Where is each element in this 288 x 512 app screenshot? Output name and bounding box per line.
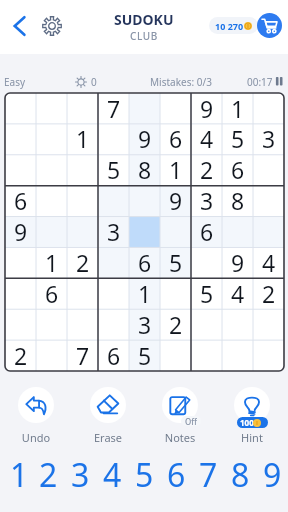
button[interactable] <box>5 123 36 154</box>
button[interactable] <box>5 278 36 309</box>
button[interactable]: 7 <box>67 340 98 371</box>
button[interactable]: 1 <box>36 247 67 278</box>
button[interactable]: 4 <box>253 247 284 278</box>
button[interactable]: Pause <box>270 72 288 90</box>
button[interactable]: 10 270 <box>209 17 258 34</box>
button[interactable] <box>5 247 36 278</box>
button[interactable]: 4 <box>222 278 253 309</box>
button[interactable] <box>36 309 67 340</box>
button[interactable]: Undo <box>8 387 64 441</box>
button[interactable]: 3 <box>64 453 96 493</box>
button[interactable] <box>36 154 67 185</box>
button[interactable]: 5 <box>98 154 129 185</box>
button[interactable] <box>253 185 284 216</box>
button[interactable]: 6 <box>191 216 222 247</box>
button[interactable]: 6 <box>98 340 129 371</box>
button[interactable]: 1 <box>67 123 98 154</box>
button[interactable]: 4 <box>96 453 128 493</box>
button[interactable] <box>253 309 284 340</box>
button[interactable] <box>67 309 98 340</box>
button[interactable] <box>191 247 222 278</box>
button[interactable]: 6 <box>222 154 253 185</box>
button[interactable] <box>222 340 253 371</box>
button[interactable] <box>67 278 98 309</box>
button[interactable]: 3 <box>253 123 284 154</box>
button[interactable] <box>36 93 67 123</box>
button[interactable] <box>129 185 160 216</box>
button[interactable] <box>222 309 253 340</box>
button[interactable] <box>191 309 222 340</box>
button[interactable] <box>67 154 98 185</box>
button[interactable] <box>253 340 284 371</box>
button[interactable] <box>36 340 67 371</box>
button[interactable] <box>253 216 284 247</box>
button[interactable] <box>129 216 160 247</box>
button[interactable]: 6 <box>5 185 36 216</box>
button[interactable]: 1 <box>160 154 191 185</box>
button[interactable]: 9 <box>160 185 191 216</box>
button[interactable] <box>67 93 98 123</box>
button[interactable]: 2 <box>5 340 36 371</box>
button[interactable]: Erase <box>80 387 136 441</box>
button[interactable] <box>253 93 284 123</box>
button[interactable]: 8 <box>129 154 160 185</box>
button[interactable] <box>160 93 191 123</box>
button[interactable]: 5 <box>128 453 160 493</box>
button[interactable]: Shop <box>257 13 282 38</box>
button[interactable] <box>98 123 129 154</box>
button[interactable]: Settings <box>37 11 67 41</box>
button[interactable]: 3 <box>98 216 129 247</box>
button[interactable]: 7 <box>98 93 129 123</box>
button[interactable]: 1 <box>129 278 160 309</box>
button[interactable] <box>98 185 129 216</box>
button[interactable] <box>191 340 222 371</box>
button[interactable]: 5 <box>191 278 222 309</box>
button[interactable] <box>36 185 67 216</box>
button[interactable] <box>36 216 67 247</box>
button[interactable]: Back <box>3 9 37 43</box>
button[interactable] <box>5 309 36 340</box>
button[interactable] <box>98 278 129 309</box>
button[interactable] <box>98 309 129 340</box>
button[interactable]: 9 <box>5 216 36 247</box>
button[interactable]: Hint <box>224 387 280 441</box>
button[interactable]: 2 <box>67 247 98 278</box>
button[interactable]: 7 <box>192 453 224 493</box>
button[interactable]: 9 <box>129 123 160 154</box>
button[interactable] <box>160 278 191 309</box>
button[interactable]: 2 <box>253 278 284 309</box>
button[interactable] <box>5 93 36 123</box>
button[interactable]: 1 <box>0 453 32 493</box>
button[interactable]: 1 <box>222 93 253 123</box>
button[interactable] <box>5 154 36 185</box>
button[interactable] <box>129 93 160 123</box>
button[interactable]: 4 <box>191 123 222 154</box>
staticText: 8 <box>231 185 245 216</box>
button[interactable]: 3 <box>129 309 160 340</box>
button[interactable]: 6 <box>160 453 192 493</box>
button[interactable] <box>36 123 67 154</box>
button[interactable]: 5 <box>129 340 160 371</box>
button[interactable] <box>98 247 129 278</box>
button[interactable] <box>67 216 98 247</box>
button[interactable]: 2 <box>32 453 64 493</box>
button[interactable]: 6 <box>160 123 191 154</box>
button[interactable]: Notes <box>152 387 208 441</box>
button[interactable]: 2 <box>160 309 191 340</box>
button[interactable]: 9 <box>191 93 222 123</box>
button[interactable] <box>222 216 253 247</box>
button[interactable] <box>253 154 284 185</box>
button[interactable]: 9 <box>222 247 253 278</box>
button[interactable] <box>160 216 191 247</box>
button[interactable]: 6 <box>36 278 67 309</box>
button[interactable]: 2 <box>191 154 222 185</box>
button[interactable]: 5 <box>222 123 253 154</box>
button[interactable] <box>160 340 191 371</box>
button[interactable]: 6 <box>129 247 160 278</box>
button[interactable]: 3 <box>191 185 222 216</box>
button[interactable]: 8 <box>222 185 253 216</box>
button[interactable]: 5 <box>160 247 191 278</box>
button[interactable]: 8 <box>224 453 256 493</box>
button[interactable] <box>67 185 98 216</box>
button[interactable]: 9 <box>256 453 288 493</box>
